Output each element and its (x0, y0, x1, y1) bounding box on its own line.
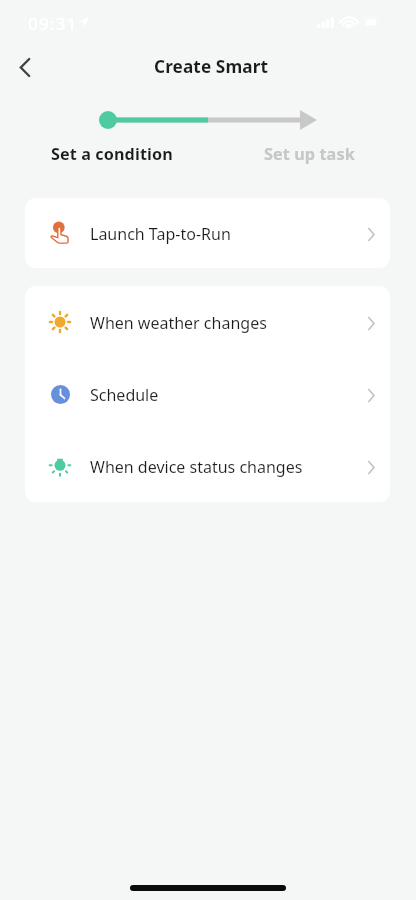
staticText: Set a condition (51, 143, 173, 165)
staticText: Create Smart (154, 55, 268, 78)
staticText: When device status changes (90, 456, 303, 478)
staticText: Set up task (264, 143, 355, 165)
staticText: Launch Tap-to-Run (90, 223, 231, 245)
button[interactable]: Schedule (25, 358, 390, 430)
button[interactable]: Launch Tap-to-Run (25, 198, 390, 268)
button[interactable]: When device status changes (25, 430, 390, 502)
button[interactable]: When weather changes (25, 286, 390, 358)
staticText: Schedule (90, 384, 159, 406)
button[interactable]: Back (3, 45, 47, 89)
staticText: 09:31 (28, 12, 78, 35)
staticText: When weather changes (90, 312, 267, 334)
